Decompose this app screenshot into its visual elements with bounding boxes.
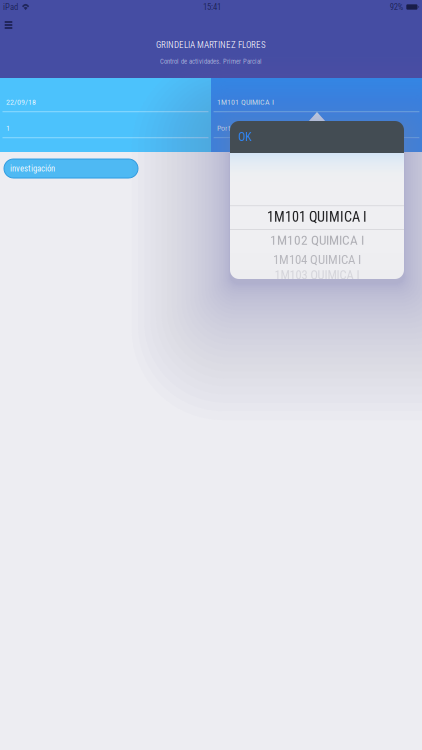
button[interactable]: investigación bbox=[4, 159, 138, 178]
staticText: 1M104 QUIMICA I bbox=[273, 252, 361, 267]
button[interactable]: OK bbox=[230, 121, 260, 153]
staticText: 22/09/18 bbox=[6, 97, 36, 107]
staticText: Portafolio bbox=[217, 123, 249, 133]
staticText: GRINDELIA MARTINEZ FLORES bbox=[156, 39, 266, 50]
staticText: 1M102 QUIMICA I bbox=[270, 232, 364, 248]
staticText: 92% bbox=[390, 2, 403, 12]
staticText: 1 bbox=[6, 123, 10, 133]
staticText: 1M103 QUIMICA I bbox=[274, 268, 359, 282]
staticText: Control de actividades. Primer Parcial bbox=[160, 57, 262, 65]
staticText: 1M101 QUIMICA I bbox=[267, 209, 367, 225]
button[interactable]: Menu bbox=[0, 15, 18, 35]
staticText: iPad bbox=[3, 2, 18, 12]
staticText: investigación bbox=[10, 163, 55, 174]
staticText: 1M101 QUIMICA I bbox=[217, 97, 274, 107]
staticText: OK bbox=[238, 130, 252, 144]
staticText: 15:41 bbox=[203, 2, 221, 12]
